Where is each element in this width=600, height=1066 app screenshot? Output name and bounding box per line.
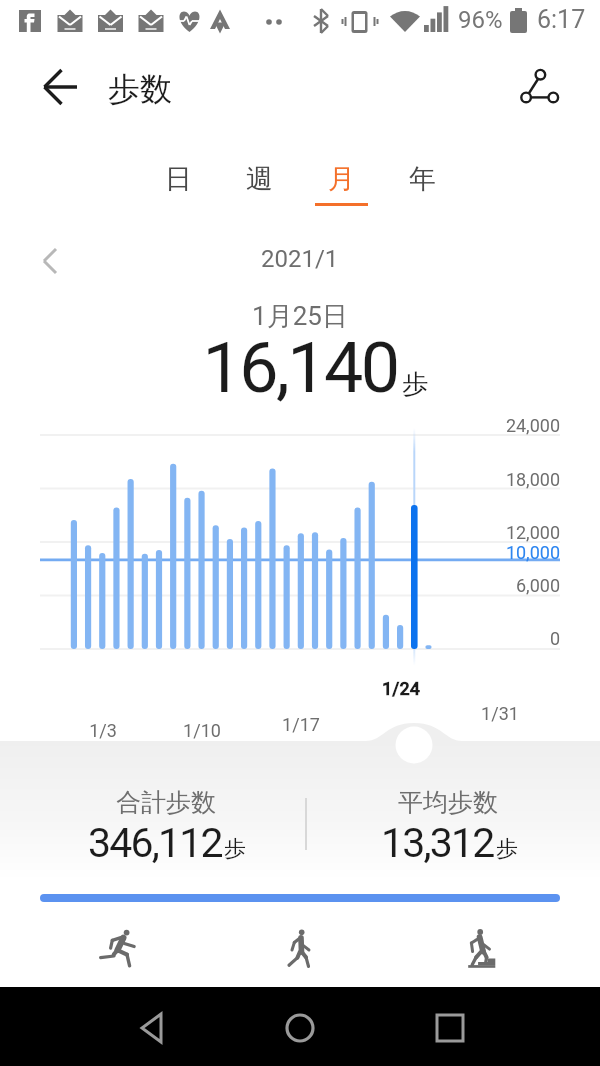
button[interactable]: 週 (223, 150, 295, 212)
staticText: 1月25日 (0, 300, 600, 333)
staticText: 合計歩数 (16, 787, 316, 818)
staticText: 1/24 (356, 678, 446, 699)
staticText: 1/10 (157, 720, 247, 741)
staticText: 13,312 (381, 819, 494, 867)
staticText: 2021/1 (261, 245, 339, 273)
staticText: 18,000 (0, 469, 560, 490)
staticText: 歩 (402, 368, 428, 401)
staticText: 6,000 (0, 575, 560, 596)
button[interactable]: Previous month (28, 238, 74, 284)
staticText: 346,112 (88, 819, 222, 867)
staticText: 16,140 (0, 327, 600, 409)
staticText: 24,000 (0, 415, 560, 436)
button[interactable]: 日 (142, 150, 214, 212)
staticText: 週 (246, 162, 273, 196)
button[interactable]: Stairs (466, 928, 496, 972)
button[interactable]: Running (96, 926, 140, 970)
staticText: 年 (409, 162, 436, 196)
staticText: 1/17 (256, 714, 346, 735)
staticText: 歩 (496, 835, 518, 863)
staticText: 10,000 (0, 542, 560, 563)
staticText: 1/3 (58, 720, 148, 741)
button[interactable]: Back (32, 62, 90, 120)
staticText: 歩 (224, 835, 246, 863)
staticText: 1/31 (455, 703, 545, 724)
staticText: 6:17 (537, 5, 586, 34)
button[interactable]: Walking (286, 928, 312, 972)
button[interactable]: 年 (386, 150, 458, 212)
staticText: 0 (0, 628, 560, 649)
button[interactable]: 月 (305, 150, 377, 212)
staticText: 日 (165, 162, 192, 196)
staticText: 平均歩数 (298, 787, 598, 818)
button[interactable]: Goal progress (40, 894, 560, 902)
staticText: 月 (328, 162, 355, 196)
staticText: 96% (458, 6, 503, 34)
button[interactable]: Share (510, 57, 566, 113)
staticText: 12,000 (0, 522, 560, 543)
staticText: 歩数 (108, 69, 172, 109)
